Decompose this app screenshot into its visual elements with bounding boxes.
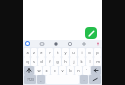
button[interactable]: z [31, 48, 37, 57]
button[interactable]: y [62, 48, 69, 57]
button[interactable]: Shift [24, 66, 34, 75]
staticText: z [33, 50, 35, 55]
staticText: h [64, 59, 67, 64]
button[interactable]: u [70, 48, 77, 57]
button[interactable]: d [38, 57, 45, 66]
staticText: t [57, 50, 59, 55]
staticText: g [56, 59, 59, 64]
button[interactable]: m [94, 57, 101, 66]
button[interactable]: Settings [81, 41, 86, 46]
staticText: k [80, 59, 83, 64]
staticText: l [89, 59, 91, 64]
staticText: p [96, 50, 99, 55]
staticText: f [49, 59, 51, 64]
button[interactable]: q [24, 57, 30, 66]
staticText: o [88, 50, 91, 55]
button[interactable]: Send [89, 75, 101, 84]
button[interactable]: i [78, 48, 85, 57]
staticText: . [83, 77, 85, 82]
button[interactable]: b [67, 66, 74, 75]
staticText: v [61, 68, 64, 73]
staticText: y [64, 50, 67, 55]
staticText: x [45, 68, 48, 73]
button[interactable]: , [37, 75, 45, 84]
button[interactable]: GIF [39, 41, 44, 46]
staticText: n [77, 68, 80, 73]
button[interactable]: Gboard menu [25, 41, 30, 46]
button[interactable]: w [35, 66, 42, 75]
button[interactable]: o [86, 48, 93, 57]
button[interactable]: s [31, 57, 37, 66]
staticText: j [73, 59, 75, 64]
button[interactable]: j [70, 57, 77, 66]
button[interactable]: p [94, 48, 101, 57]
staticText: s [33, 59, 35, 64]
button[interactable]: . [80, 75, 88, 84]
button[interactable]: n [75, 66, 82, 75]
staticText: ' [86, 68, 87, 73]
button[interactable]: ' [83, 66, 90, 75]
button[interactable]: e [38, 48, 45, 57]
staticText: e [40, 50, 43, 55]
staticText: ?123 [27, 78, 34, 82]
button[interactable]: r [46, 48, 53, 57]
button[interactable]: ?123 [24, 75, 36, 84]
button[interactable]: Backspace [91, 66, 101, 75]
button[interactable]: Compose message [85, 27, 97, 39]
staticText: a [26, 50, 29, 55]
button[interactable]: a [24, 48, 30, 57]
staticText: c [54, 68, 56, 73]
staticText: u [72, 50, 75, 55]
button[interactable]: Voice input [95, 41, 100, 46]
button[interactable]: Emoji [67, 41, 72, 46]
button[interactable]: c [51, 66, 58, 75]
button[interactable]: k [78, 57, 85, 66]
button[interactable]: x [43, 66, 50, 75]
staticText: q [26, 59, 29, 64]
staticText: i [81, 50, 83, 55]
staticText: , [40, 77, 42, 82]
button[interactable]: g [54, 57, 61, 66]
button[interactable]: Stickers [53, 41, 58, 46]
staticText: r [49, 50, 51, 55]
button[interactable]: f [46, 57, 53, 66]
button[interactable]: l [86, 57, 93, 66]
button[interactable]: t [54, 48, 61, 57]
staticText: w [37, 68, 41, 73]
staticText: d [40, 59, 43, 64]
button[interactable]: h [62, 57, 69, 66]
button[interactable]: v [59, 66, 66, 75]
staticText: b [69, 68, 72, 73]
staticText: m [96, 59, 100, 64]
